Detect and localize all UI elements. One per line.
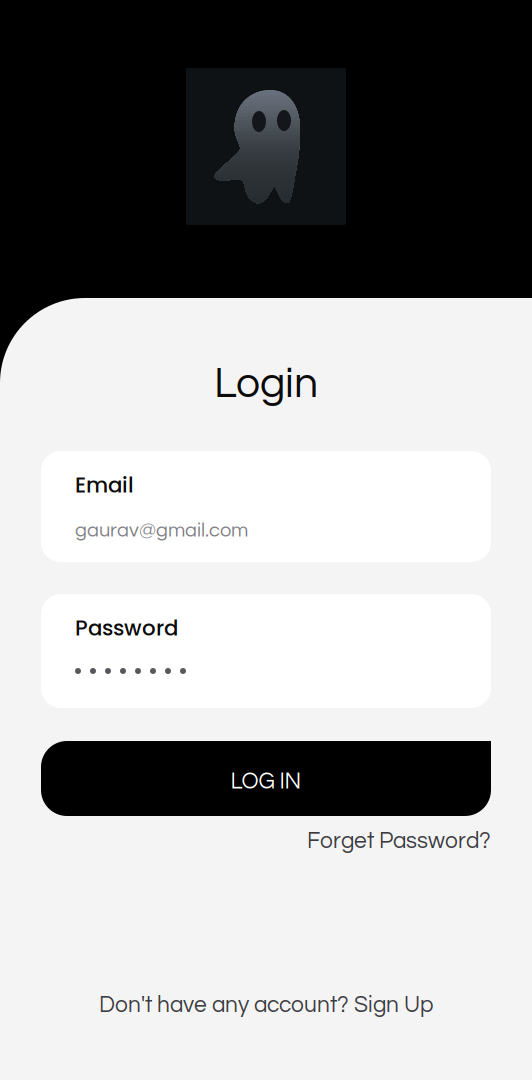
button[interactable]: Don't have any account? Sign Up: [99, 992, 433, 1018]
staticText: LOG IN: [230, 770, 301, 793]
button[interactable]: Forget Password?: [307, 828, 491, 854]
staticText: Don't have any account? Sign Up: [99, 993, 433, 1017]
staticText: Email: [75, 470, 134, 500]
button[interactable]: LOG IN: [41, 741, 491, 816]
staticText: Password: [75, 613, 178, 643]
staticText: Forget Password?: [307, 829, 491, 853]
staticText: gaurav@gmail.com: [75, 520, 248, 541]
staticText: Login: [214, 362, 318, 406]
